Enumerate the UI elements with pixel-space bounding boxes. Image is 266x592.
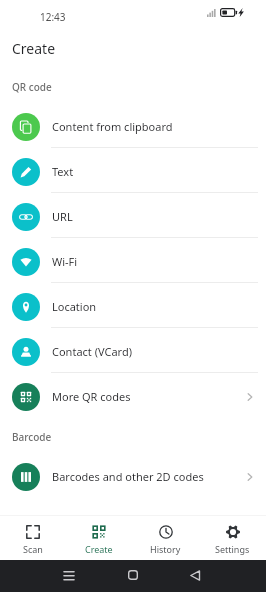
button[interactable]: Content from clipboard (0, 104, 266, 149)
staticText: 12:43 (40, 10, 66, 24)
button[interactable]: History (132, 516, 199, 559)
other: Recents (64, 570, 74, 580)
button[interactable]: URL (0, 194, 266, 239)
staticText: Settings (215, 543, 250, 555)
staticText: History (150, 543, 181, 555)
staticText: Barcode (12, 430, 52, 444)
staticText: Barcodes and other 2D codes (52, 469, 204, 484)
button[interactable]: Create (66, 516, 132, 559)
staticText: Content from clipboard (52, 119, 173, 134)
staticText: Create (85, 543, 113, 555)
button[interactable]: Barcodes and other 2D codes (0, 454, 266, 499)
button[interactable]: Text (0, 149, 266, 194)
other: Back (190, 570, 200, 581)
staticText: More QR codes (52, 389, 131, 404)
button[interactable]: Wi-Fi (0, 239, 266, 284)
other: Home (128, 570, 138, 580)
staticText: QR code (12, 80, 52, 94)
button[interactable]: Location (0, 284, 266, 329)
button[interactable]: Settings (199, 516, 266, 559)
staticText: Scan (23, 543, 43, 555)
staticText: Wi-Fi (52, 254, 78, 269)
staticText: Contact (VCard) (52, 344, 132, 359)
staticText: Location (52, 299, 97, 314)
button[interactable]: Contact (VCard) (0, 329, 266, 374)
staticText: Text (52, 164, 74, 179)
button[interactable]: Scan (0, 516, 66, 559)
staticText: Create (12, 39, 56, 58)
button[interactable]: More QR codes (0, 374, 266, 419)
staticText: URL (52, 209, 73, 224)
